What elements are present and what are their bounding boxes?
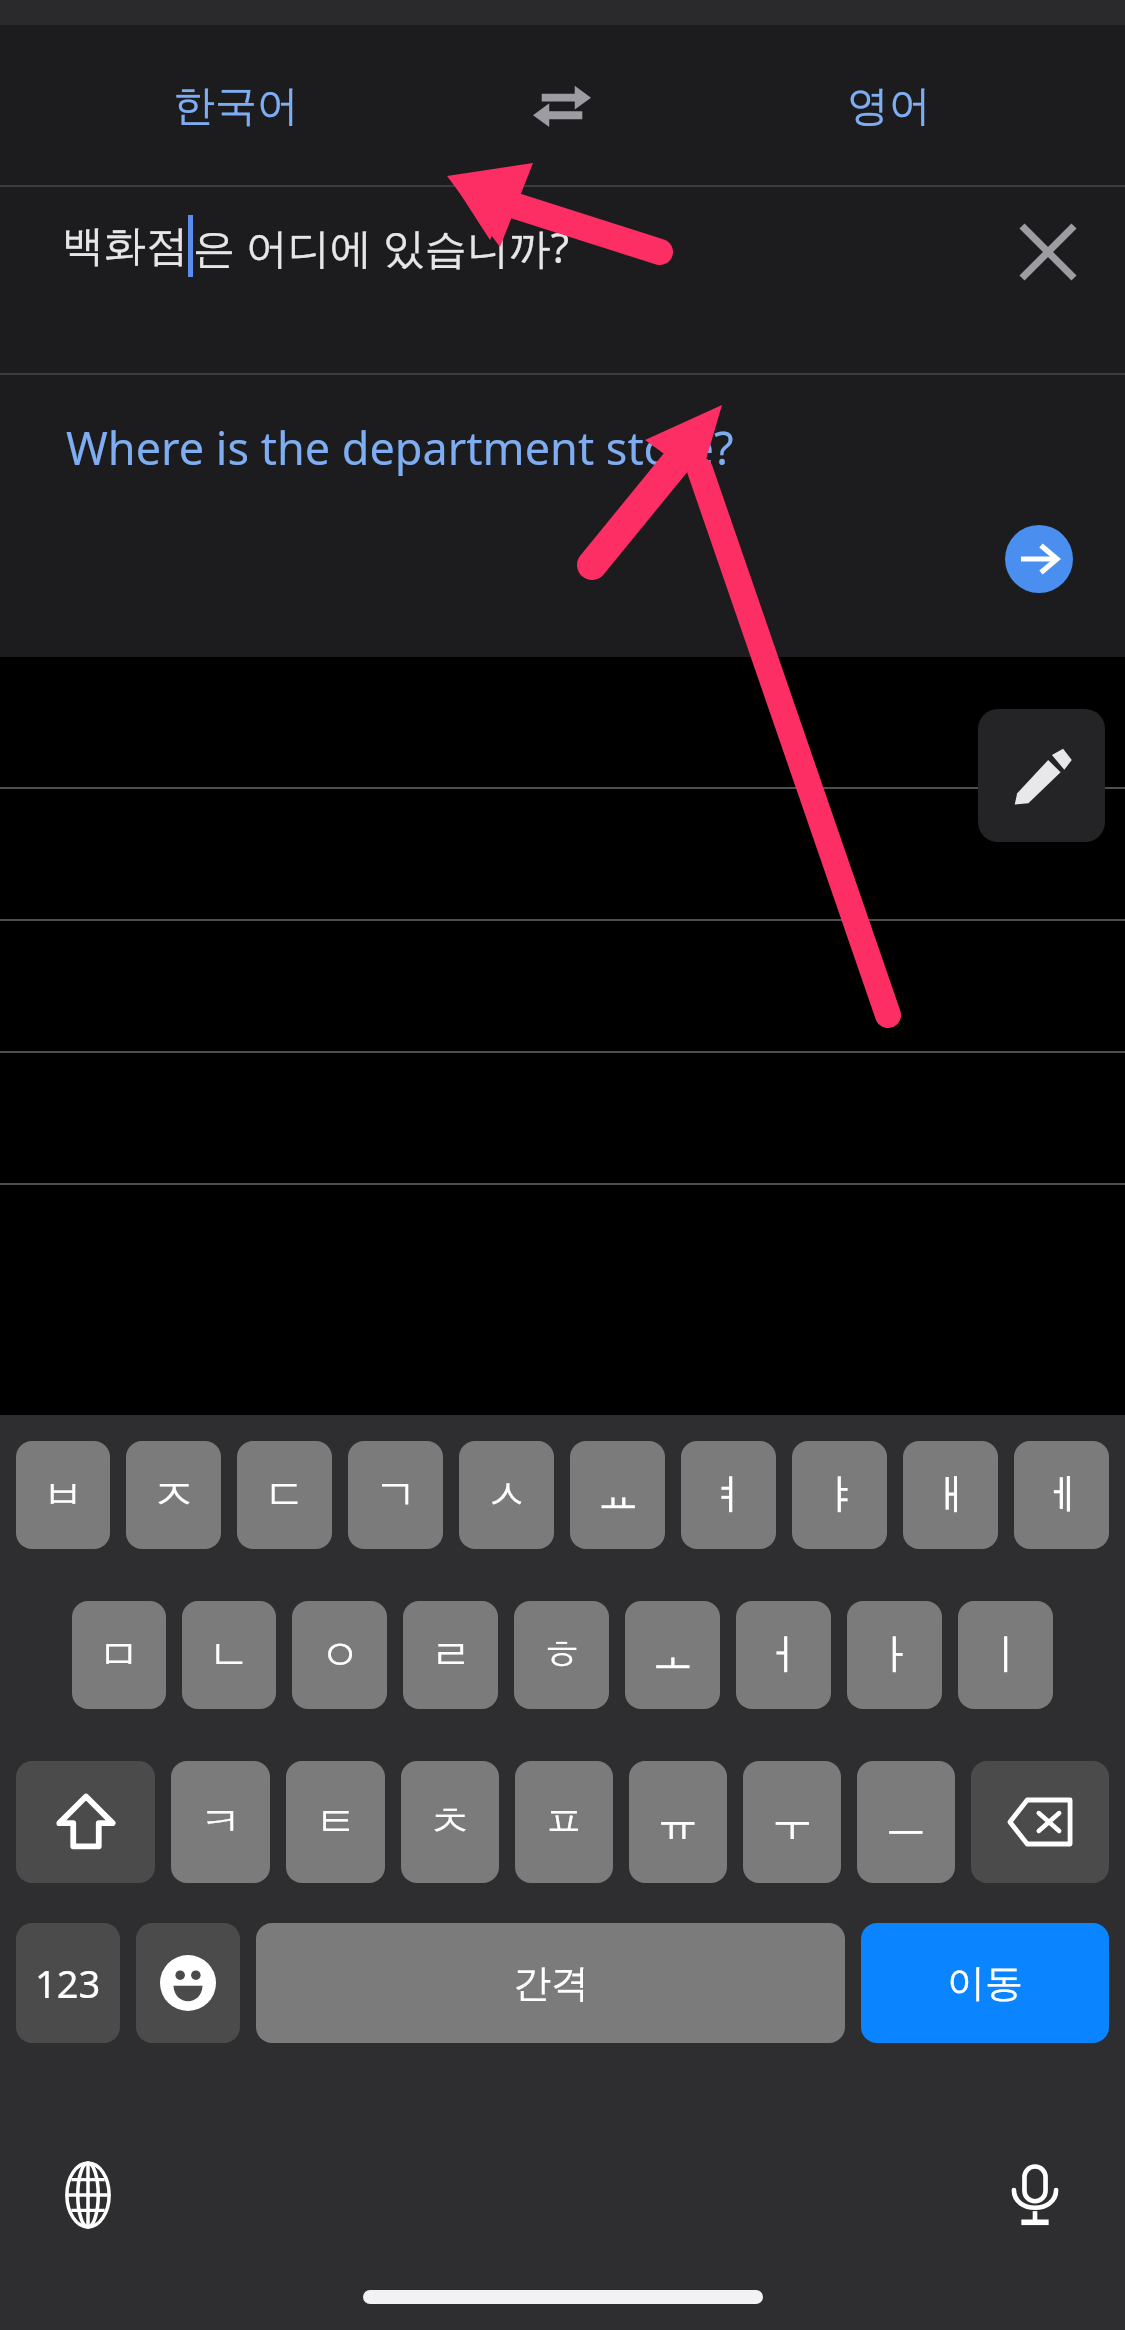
button[interactable]: 이동 — [861, 1923, 1109, 2043]
staticText: ㅅ — [486, 1469, 528, 1522]
staticText: ㅗ — [652, 1629, 694, 1682]
staticText: ㅡ — [885, 1796, 927, 1849]
staticText: ㅋ — [200, 1796, 242, 1849]
button[interactable]: 123 — [16, 1923, 120, 2043]
staticText: ㅏ — [874, 1629, 916, 1682]
staticText: ㅐ — [930, 1469, 972, 1522]
button[interactable]: Change keyboard — [28, 2135, 148, 2255]
button[interactable]: 한국어 — [0, 25, 472, 187]
staticText: ㅎ — [541, 1629, 583, 1682]
button[interactable]: Swap languages — [472, 25, 652, 187]
staticText: ㅔ — [1041, 1469, 1083, 1522]
staticText: 123 — [35, 1957, 101, 2009]
staticText: ㅑ — [819, 1469, 861, 1522]
button[interactable]: ㄴ — [182, 1601, 276, 1709]
staticText: ㄷ — [264, 1469, 306, 1522]
button[interactable]: ㅁ — [72, 1601, 166, 1709]
staticText: ㅣ — [985, 1629, 1027, 1682]
staticText: ㄴ — [208, 1629, 250, 1682]
button[interactable]: Emoji — [136, 1923, 240, 2043]
button[interactable]: ㅡ — [857, 1761, 955, 1883]
button[interactable]: ㅂ — [16, 1441, 110, 1549]
button[interactable]: ㅑ — [792, 1441, 887, 1549]
button[interactable]: Handwriting input — [978, 709, 1105, 842]
staticText: ㅂ — [42, 1469, 84, 1522]
staticText: ㅈ — [153, 1469, 195, 1522]
button[interactable]: ㅜ — [743, 1761, 841, 1883]
staticText: ㅓ — [763, 1629, 805, 1682]
staticText: 백화점 — [62, 220, 188, 273]
button[interactable]: ㅋ — [171, 1761, 270, 1883]
button[interactable]: Clear text — [993, 197, 1103, 307]
staticText: 영어 — [847, 80, 931, 133]
button[interactable]: ㅐ — [903, 1441, 998, 1549]
staticText: Where is the department store? — [66, 417, 734, 478]
staticText: 이동 — [947, 1959, 1023, 2007]
staticText: ㅛ — [597, 1469, 639, 1522]
button[interactable]: ㅓ — [736, 1601, 831, 1709]
button[interactable]: ㅔ — [1014, 1441, 1109, 1549]
button[interactable]: 영어 — [652, 25, 1125, 187]
button[interactable]: ㅌ — [286, 1761, 385, 1883]
button[interactable]: 간격 — [256, 1923, 845, 2043]
button[interactable]: Backspace — [971, 1761, 1109, 1883]
button[interactable]: ㅈ — [126, 1441, 221, 1549]
staticText: ㅕ — [708, 1469, 750, 1522]
button[interactable]: ㅍ — [515, 1761, 613, 1883]
staticText: ㅠ — [657, 1796, 699, 1849]
staticText: ㅇ — [319, 1629, 361, 1682]
staticText: ㅌ — [315, 1796, 357, 1849]
button[interactable]: ㅕ — [681, 1441, 776, 1549]
button[interactable]: ㄹ — [403, 1601, 498, 1709]
button[interactable]: Voice input — [975, 2135, 1095, 2255]
button[interactable]: ㅎ — [514, 1601, 609, 1709]
button[interactable]: ㅊ — [401, 1761, 499, 1883]
button[interactable]: ㅛ — [570, 1441, 665, 1549]
staticText: ㄱ — [375, 1469, 417, 1522]
staticText: ㅍ — [543, 1796, 585, 1849]
button[interactable]: Go — [1005, 525, 1073, 593]
button[interactable]: ㄷ — [237, 1441, 332, 1549]
button[interactable]: 백화점 — [0, 187, 1125, 375]
button[interactable]: ㅗ — [625, 1601, 720, 1709]
staticText: ㅁ — [98, 1629, 140, 1682]
staticText: 한국어 — [173, 80, 299, 133]
staticText: ㅊ — [429, 1796, 471, 1849]
button[interactable]: ㅇ — [292, 1601, 387, 1709]
button[interactable]: ㅅ — [459, 1441, 554, 1549]
staticText: ㄹ — [430, 1629, 472, 1682]
button[interactable]: ㅣ — [958, 1601, 1053, 1709]
button[interactable]: ㅠ — [629, 1761, 727, 1883]
button[interactable]: Shift — [16, 1761, 155, 1883]
button[interactable]: ㄱ — [348, 1441, 443, 1549]
staticText: ㅜ — [771, 1796, 813, 1849]
button[interactable]: ㅏ — [847, 1601, 942, 1709]
staticText: 간격 — [513, 1959, 589, 2007]
staticText: 은 어디에 있습니까? — [193, 218, 570, 275]
